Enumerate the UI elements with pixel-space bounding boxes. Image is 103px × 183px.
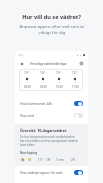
staticText: 15° (56, 71, 62, 75)
staticText: Anpassa appen efter vad som är viktigt f… (19, 23, 85, 35)
button[interactable]: Visa väderprognos för natt (15, 166, 88, 178)
staticText: 09:00 (40, 85, 47, 89)
staticText: Se hur temperaturen och nederbörden har … (20, 135, 78, 147)
staticText: Visa vind (20, 113, 74, 118)
staticText: Hur vill du se vädret? (22, 13, 81, 21)
staticText: Personliga väderinställningar (30, 62, 67, 66)
staticText: 11:00 (72, 85, 79, 89)
staticText: 12° (72, 71, 78, 75)
staticText: 1 mm (56, 158, 64, 162)
staticText: 08:00 (24, 85, 31, 89)
staticText: 10:00 (56, 85, 63, 89)
staticText: 18° (46, 158, 51, 162)
staticText: 14° (40, 71, 46, 75)
button[interactable]: Visa vind (15, 109, 88, 121)
staticText: 13° (24, 71, 30, 75)
staticText: Översikt: 10-dagarsvädret (20, 128, 67, 133)
staticText: Visa väderprognos för natt (20, 170, 74, 175)
staticText: 13° (38, 158, 43, 162)
button[interactable]: Settings (79, 61, 84, 66)
staticText: 2% (71, 158, 76, 162)
button[interactable]: Visa kommande 24h (15, 97, 88, 109)
staticText: Visa kommande 24h (20, 101, 74, 106)
staticText: Norrköping (20, 151, 38, 155)
